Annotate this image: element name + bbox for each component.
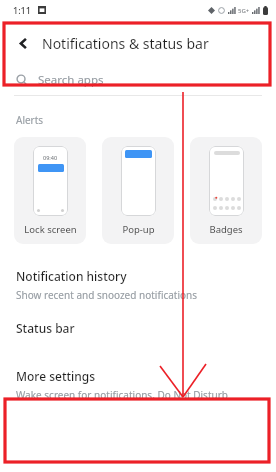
staticText: Notifications & status bar (42, 34, 209, 53)
button[interactable]: 09:40 (14, 137, 86, 244)
button[interactable]: Back (10, 30, 36, 56)
staticText: Lock screen (24, 223, 77, 236)
button[interactable]: Back (0, 20, 276, 66)
button[interactable]: More settings (0, 366, 276, 404)
staticText: 5G+ (238, 7, 250, 15)
staticText: Show recent and snoozed notifications (16, 288, 198, 302)
staticText: 09:40 (43, 154, 58, 161)
staticText: Pop-up (122, 223, 155, 236)
button[interactable]: Notification history (0, 266, 276, 304)
staticText: Search apps (38, 72, 104, 88)
staticText: Alerts (16, 113, 44, 127)
button[interactable]: Pop-up (102, 137, 174, 244)
staticText: More settings (16, 368, 96, 384)
staticText: Status bar (16, 320, 75, 336)
staticText: Notification history (16, 268, 127, 284)
staticText: Badges (209, 223, 243, 236)
button[interactable]: Search apps (0, 66, 276, 94)
staticText: 1:11 (13, 4, 31, 16)
staticText: Wake screen for notifications, Do Not Di… (16, 388, 228, 402)
button[interactable]: Badges (190, 137, 262, 244)
